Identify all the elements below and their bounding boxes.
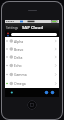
button[interactable]: Bravo (5, 45, 59, 53)
button[interactable]: Gamma (5, 70, 59, 79)
button[interactable]: Home (27, 100, 37, 110)
staticText: SAP Cloud (22, 25, 43, 31)
staticText: Delta (14, 55, 23, 60)
staticText: Gamma (14, 72, 27, 77)
button[interactable]: Alpha (5, 37, 59, 45)
button[interactable] (11, 33, 57, 36)
staticText: Omega (14, 81, 26, 86)
staticText: Echo (14, 63, 22, 68)
button[interactable]: Echo (5, 61, 59, 70)
button[interactable]: Delta (5, 53, 59, 61)
button[interactable]: Settings (6, 26, 19, 30)
staticText: Alpha (14, 39, 24, 44)
button[interactable]: Omega (5, 79, 59, 88)
staticText: Bravo (14, 47, 24, 52)
